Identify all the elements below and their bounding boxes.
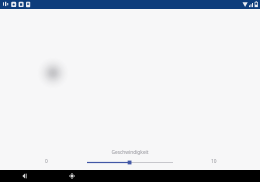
staticText: 0 <box>45 158 48 165</box>
staticText: 10 <box>211 158 217 165</box>
staticText: Geschwindigkeit <box>111 149 149 156</box>
button[interactable]: Geschwindigkeit slider <box>87 157 173 167</box>
button[interactable]: Home <box>65 170 79 182</box>
button[interactable]: Back <box>17 170 31 182</box>
